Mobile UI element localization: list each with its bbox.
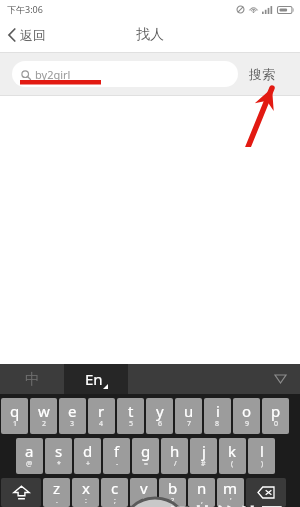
staticText: o [242,401,252,421]
staticText: i [216,401,220,421]
staticText: = [144,459,149,469]
staticText: q [10,401,20,421]
button[interactable]: a [16,438,43,474]
staticText: 4 [99,419,104,429]
staticText: b [168,478,178,498]
staticText: x [82,478,90,498]
staticText: . [56,496,58,505]
staticText: / [174,459,177,469]
button[interactable]: c [101,478,128,507]
staticText: e [68,401,77,421]
staticText: h [170,441,180,461]
staticText: w [38,401,50,421]
staticText: c [111,478,119,498]
button[interactable]: Shift [1,478,41,507]
button[interactable]: k [219,438,246,474]
staticText: ! [143,496,145,505]
staticText: 中 [25,370,40,389]
staticText: ' [230,496,232,505]
button[interactable]: d [74,438,101,474]
staticText: 绿茶软件园 [168,503,283,507]
staticText: + [86,459,91,469]
button[interactable]: n [188,478,215,507]
button[interactable]: v [130,478,157,507]
button[interactable]: f [103,438,130,474]
staticText: , [201,496,203,505]
staticText: En [85,369,103,389]
button[interactable]: t [117,398,144,434]
staticText: 0 [274,419,279,429]
staticText: * [57,459,61,469]
button[interactable]: g [132,438,159,474]
button[interactable]: p [262,398,289,434]
staticText: 5 [129,419,134,429]
button[interactable]: x [72,478,99,507]
staticText: 8 [215,419,220,429]
staticText: z [53,478,61,498]
button[interactable]: h [161,438,188,474]
staticText: 下午3:06 [7,3,43,15]
button[interactable]: j [190,438,217,474]
staticText: 6 [158,419,163,429]
button[interactable]: e [59,398,86,434]
staticText: m [223,478,238,498]
staticText: a [25,441,34,461]
button[interactable]: Backspace [246,478,286,507]
staticText: 9 [245,419,250,429]
button[interactable]: u [175,398,202,434]
button[interactable]: 中 [0,364,64,394]
staticText: t [128,401,134,421]
staticText: l [260,441,264,461]
staticText: 7 [187,419,192,429]
staticText: ? [171,496,175,505]
staticText: 返回 [20,27,46,43]
staticText: u [184,401,194,421]
button[interactable]: z [43,478,70,507]
button[interactable]: 搜索 [243,57,281,91]
staticText: - [116,459,119,469]
staticText: ( [231,459,234,469]
staticText: n [197,478,207,498]
staticText: p [271,401,281,421]
button[interactable]: b [159,478,186,507]
button[interactable]: m [217,478,244,507]
button[interactable]: Hide keyboard [128,364,300,394]
button[interactable]: by2girl [12,61,238,87]
button[interactable]: l [248,438,275,474]
staticText: 1 [13,419,18,429]
staticText: 找人 [136,26,164,44]
staticText: k [228,441,237,461]
button[interactable]: r [88,398,115,434]
button[interactable]: y [146,398,173,434]
staticText: f [114,441,120,461]
staticText: 搜索 [249,66,275,82]
staticText: # [201,459,206,469]
button[interactable]: q [1,398,28,434]
staticText: @ [26,459,33,469]
staticText: j [202,441,206,461]
staticText: 2 [42,419,47,429]
staticText: : [85,496,87,505]
staticText: ) [261,459,264,469]
button[interactable]: En [64,364,128,394]
button[interactable]: s [45,438,72,474]
staticText: by2girl [35,67,71,82]
staticText: ; [114,496,116,505]
staticText: d [83,441,93,461]
staticText: g [141,441,151,461]
button[interactable]: 返回 [0,22,58,48]
button[interactable]: w [30,398,57,434]
staticText: s [55,441,63,461]
staticText: r [98,401,105,421]
staticText: 3 [70,419,75,429]
button[interactable]: o [233,398,260,434]
staticText: v [140,478,148,498]
button[interactable]: i [204,398,231,434]
staticText: y [156,401,164,421]
